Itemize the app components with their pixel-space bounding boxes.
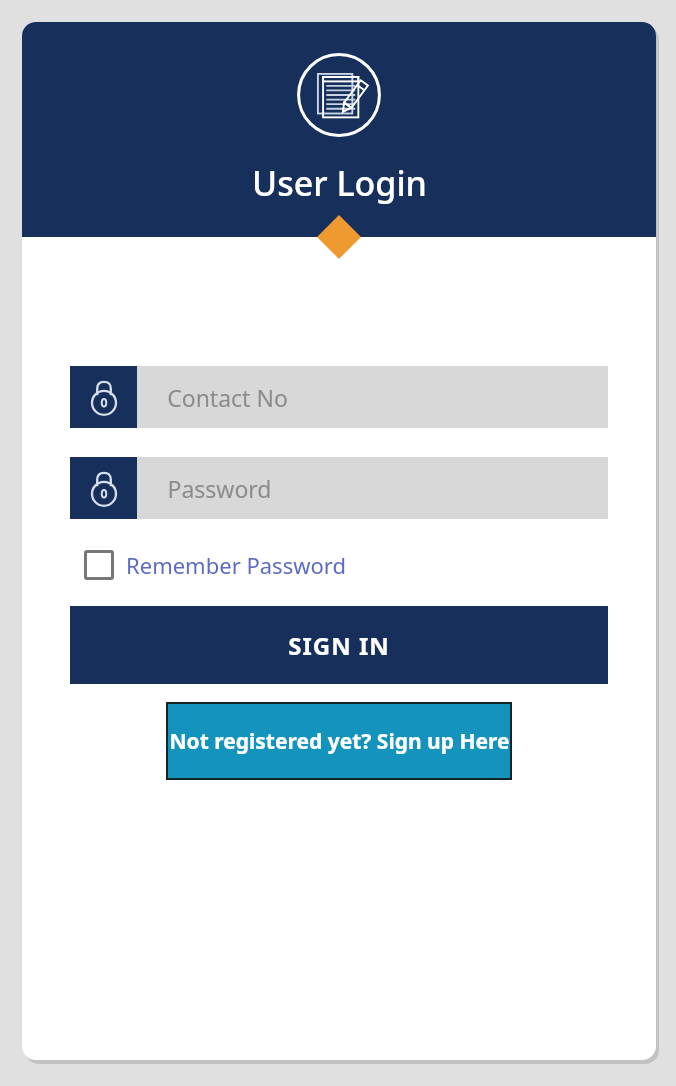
staticText: Contact No — [167, 382, 288, 413]
button[interactable]: Not registered yet? Sign up Here — [168, 704, 510, 778]
staticText: User Login — [252, 160, 427, 206]
other: Login — [296, 52, 382, 138]
button[interactable]: Lock — [70, 457, 608, 519]
staticText: Remember Password — [126, 550, 346, 580]
staticText: Password — [167, 473, 272, 504]
button[interactable]: SIGN IN — [70, 606, 608, 684]
staticText: SIGN IN — [288, 629, 390, 662]
button[interactable]: Remember Password — [82, 546, 348, 584]
other: Lock — [84, 377, 124, 417]
other: Lock — [84, 468, 124, 508]
staticText: Not registered yet? Sign up Here — [169, 727, 510, 756]
button[interactable]: Lock — [70, 366, 608, 428]
